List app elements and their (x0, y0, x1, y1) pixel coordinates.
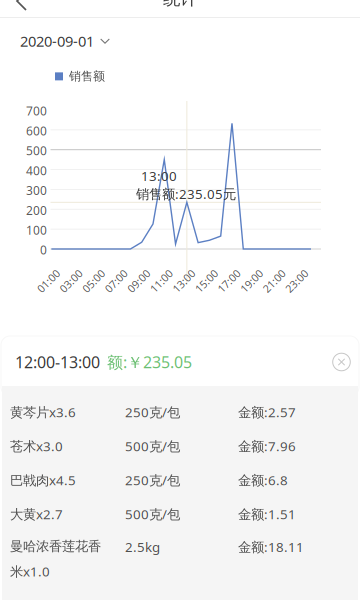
staticText: 23:00 (283, 274, 310, 288)
staticText: 米x1.0 (10, 562, 50, 580)
staticText: 03:00 (57, 274, 84, 288)
staticText: 500 (26, 143, 47, 159)
staticText: 大黄x2.7 (10, 505, 63, 523)
staticText: 500克/包 (125, 505, 180, 523)
staticText: 销售额:235.05元 (136, 185, 236, 203)
staticText: 金额:1.51 (238, 505, 296, 523)
staticText: 21:00 (261, 274, 288, 288)
staticText: 19:00 (238, 274, 265, 288)
staticText: 11:00 (148, 274, 175, 288)
button[interactable]: Close (332, 352, 351, 371)
button[interactable]: Back (0, 0, 26, 30)
staticText: 金额:6.8 (238, 471, 288, 489)
staticText: 曼哈浓香莲花香 (10, 538, 101, 554)
staticText: 金额:2.57 (238, 403, 296, 421)
staticText: 15:00 (193, 274, 220, 288)
staticText: 销售额 (69, 69, 105, 84)
staticText: 09:00 (125, 274, 152, 288)
staticText: 250克/包 (125, 471, 180, 489)
staticText: 额:￥235.05 (107, 351, 192, 373)
staticText: 黄芩片x3.6 (10, 403, 76, 421)
staticText: 07:00 (103, 274, 130, 288)
staticText: 13:00 (170, 274, 197, 288)
staticText: 500克/包 (125, 437, 180, 455)
staticText: 金额:18.11 (238, 538, 304, 556)
staticText: 01:00 (35, 274, 62, 288)
staticText: 2.5kg (125, 538, 160, 556)
staticText: 2020-09-01 (20, 31, 94, 51)
staticText: 金额:7.96 (238, 437, 296, 455)
staticText: 300 (26, 182, 47, 198)
staticText: 苍术x3.0 (10, 437, 63, 455)
staticText: 400 (26, 163, 47, 178)
staticText: 0 (40, 242, 47, 258)
staticText: 250克/包 (125, 403, 180, 421)
staticText: 17:00 (215, 274, 242, 288)
staticText: 13:00 (141, 167, 177, 185)
staticText: 巴戟肉x4.5 (10, 471, 76, 489)
staticText: 05:00 (80, 274, 107, 288)
staticText: 100 (26, 222, 47, 238)
button[interactable]: 2020-09-01 (0, 28, 120, 54)
staticText: 统计 (163, 0, 197, 9)
staticText: 600 (26, 123, 47, 139)
staticText: 12:00-13:00 (15, 351, 100, 373)
staticText: 200 (26, 202, 47, 218)
staticText: 700 (26, 103, 47, 119)
